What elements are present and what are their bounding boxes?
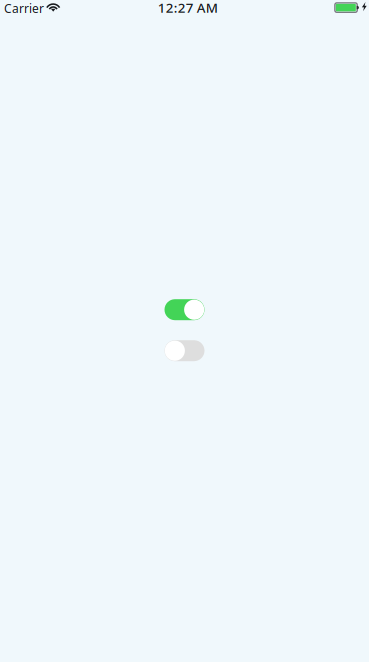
button[interactable]: Toggle, off	[164, 340, 204, 361]
button[interactable]: Toggle, on	[164, 299, 204, 320]
staticText: Carrier	[4, 0, 44, 16]
staticText: 12:27 AM	[158, 0, 218, 16]
